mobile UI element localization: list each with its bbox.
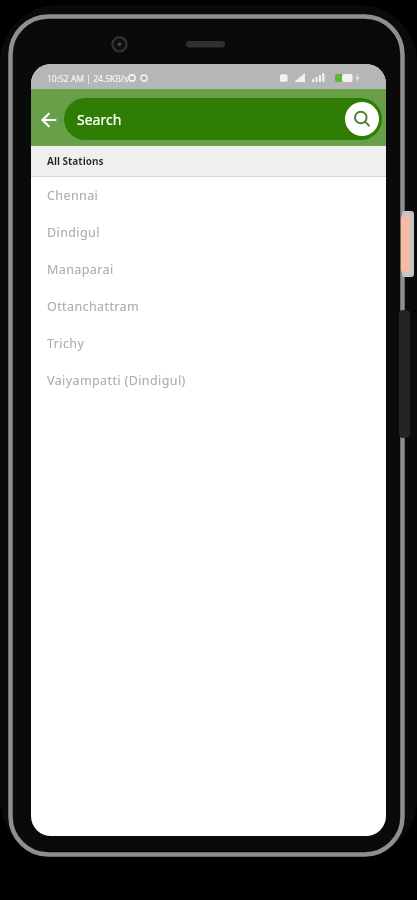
button[interactable]: Manaparai	[31, 251, 386, 288]
button[interactable]	[37, 108, 61, 132]
staticText: Ottanchattram	[47, 298, 140, 315]
button[interactable]: Ottanchattram	[31, 288, 386, 325]
button[interactable]: Chennai	[31, 177, 386, 214]
staticText: Trichy	[47, 335, 85, 352]
staticText: Manaparai	[47, 261, 114, 278]
button[interactable]: Dindigul	[31, 214, 386, 251]
staticText: Vaiyampatti (Dindigul)	[47, 372, 186, 389]
button[interactable]: Vaiyampatti (Dindigul)	[31, 362, 386, 399]
staticText: All Stations	[47, 154, 104, 168]
staticText: 10:52 AM | 24.5KB/s	[47, 73, 129, 85]
staticText: Dindigul	[47, 224, 100, 241]
button[interactable]: Trichy	[31, 325, 386, 362]
staticText: Search	[77, 110, 122, 129]
button[interactable]: Search	[64, 98, 382, 140]
staticText: Chennai	[47, 187, 99, 204]
button[interactable]	[345, 102, 379, 136]
